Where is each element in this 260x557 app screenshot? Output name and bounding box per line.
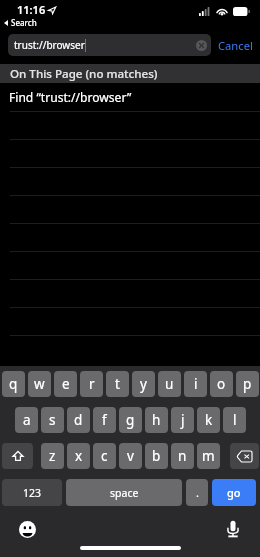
- button[interactable]: g: [119, 407, 142, 433]
- button[interactable]: q: [2, 371, 25, 397]
- button[interactable]: Clear text: [196, 40, 207, 51]
- staticText: space: [110, 486, 139, 500]
- button[interactable]: [0, 111, 260, 139]
- button[interactable]: a: [15, 407, 38, 433]
- button[interactable]: space: [66, 479, 182, 506]
- button[interactable]: Backspace: [230, 443, 259, 469]
- button[interactable]: trust://browser: [8, 34, 211, 56]
- button[interactable]: [0, 251, 260, 279]
- button[interactable]: r: [80, 371, 103, 397]
- staticText: u: [165, 375, 174, 393]
- button[interactable]: j: [171, 407, 194, 433]
- button[interactable]: v: [119, 443, 142, 469]
- button[interactable]: c: [93, 443, 116, 469]
- button[interactable]: s: [41, 407, 64, 433]
- staticText: g: [126, 411, 135, 429]
- button[interactable]: [0, 195, 260, 223]
- button[interactable]: i: [184, 371, 207, 397]
- staticText: z: [49, 447, 56, 465]
- staticText: m: [202, 447, 215, 465]
- staticText: i: [194, 375, 198, 393]
- button[interactable]: o: [210, 371, 233, 397]
- staticText: a: [23, 411, 31, 429]
- staticText: h: [152, 411, 161, 429]
- staticText: On This Page (no matches): [10, 66, 158, 82]
- button[interactable]: [0, 223, 260, 251]
- button[interactable]: Emoji keyboard: [14, 516, 40, 542]
- button[interactable]: x: [67, 443, 90, 469]
- button[interactable]: n: [171, 443, 194, 469]
- button[interactable]: e: [54, 371, 77, 397]
- staticText: r: [89, 375, 95, 393]
- button[interactable]: d: [67, 407, 90, 433]
- button[interactable]: t: [106, 371, 129, 397]
- button[interactable]: [0, 335, 260, 363]
- staticText: q: [9, 375, 18, 393]
- staticText: Search: [11, 17, 37, 28]
- staticText: trust://browser: [14, 38, 85, 52]
- staticText: v: [127, 447, 134, 465]
- staticText: n: [178, 447, 187, 465]
- staticText: j: [181, 411, 185, 429]
- button[interactable]: u: [158, 371, 181, 397]
- button[interactable]: .: [186, 479, 208, 506]
- staticText: t: [115, 375, 120, 393]
- button[interactable]: Cancel: [218, 38, 253, 53]
- staticText: k: [205, 411, 213, 429]
- button[interactable]: h: [145, 407, 168, 433]
- staticText: e: [62, 375, 70, 393]
- staticText: 123: [23, 486, 42, 500]
- button[interactable]: [0, 167, 260, 195]
- button[interactable]: y: [132, 371, 155, 397]
- button[interactable]: 123: [2, 479, 62, 506]
- staticText: b: [152, 447, 161, 465]
- button[interactable]: b: [145, 443, 168, 469]
- button[interactable]: [0, 139, 260, 167]
- staticText: f: [102, 411, 107, 429]
- button[interactable]: Shift: [2, 443, 33, 469]
- staticText: w: [34, 375, 45, 393]
- button[interactable]: [0, 279, 260, 307]
- button[interactable]: f: [93, 407, 116, 433]
- staticText: o: [217, 375, 226, 393]
- staticText: Find “trust://browser”: [9, 89, 132, 105]
- staticText: p: [243, 375, 252, 393]
- staticText: 11:16: [17, 2, 46, 17]
- staticText: d: [74, 411, 83, 429]
- button[interactable]: w: [28, 371, 51, 397]
- button[interactable]: m: [197, 443, 220, 469]
- button[interactable]: go: [212, 479, 256, 506]
- staticText: .: [196, 485, 199, 500]
- button[interactable]: Dictation: [220, 516, 246, 542]
- button[interactable]: p: [236, 371, 259, 397]
- button[interactable]: k: [197, 407, 220, 433]
- staticText: Cancel: [218, 38, 253, 53]
- staticText: go: [227, 485, 241, 500]
- staticText: x: [75, 447, 83, 465]
- button[interactable]: l: [223, 407, 246, 433]
- button[interactable]: z: [41, 443, 64, 469]
- staticText: s: [49, 411, 56, 429]
- button[interactable]: Find “trust://browser”: [9, 83, 260, 111]
- staticText: l: [233, 411, 237, 429]
- button[interactable]: [0, 307, 260, 335]
- staticText: c: [101, 447, 108, 465]
- staticText: y: [140, 375, 147, 393]
